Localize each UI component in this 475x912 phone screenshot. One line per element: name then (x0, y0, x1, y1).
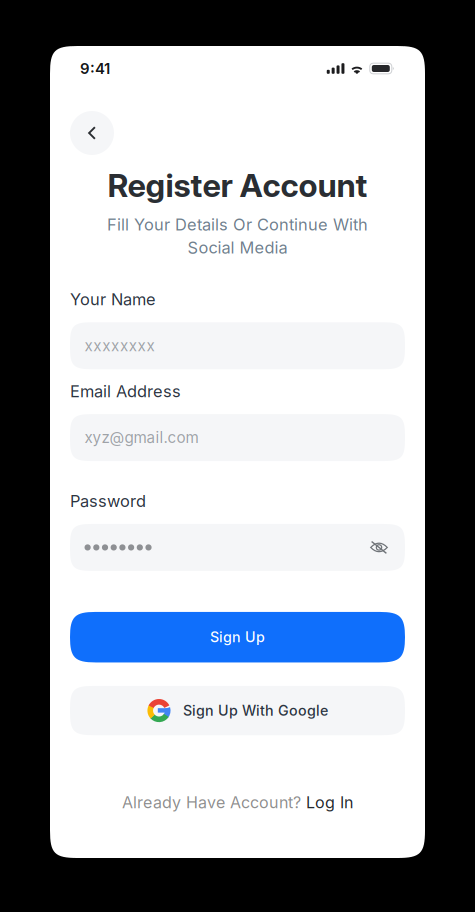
staticText: Sign Up With Google (183, 702, 328, 719)
button[interactable]: Back (70, 111, 114, 155)
staticText: Already Have Account? (122, 793, 301, 812)
staticText: Social Media (187, 238, 287, 257)
button[interactable]: Sign Up With Google (70, 686, 405, 735)
button[interactable]: Log In (306, 793, 353, 812)
button[interactable]: Show password (370, 541, 388, 554)
staticText: 9:41 (80, 59, 110, 78)
staticText: Sign Up (210, 629, 265, 646)
button[interactable]: Sign Up (70, 612, 405, 662)
staticText: xxxxxxxx (84, 337, 154, 355)
staticText: Log In (306, 793, 353, 812)
staticText: xyz@gmail.com (84, 428, 198, 447)
staticText: Register Account (107, 166, 367, 205)
staticText: Email Address (70, 381, 181, 401)
staticText: Your Name (70, 289, 156, 309)
staticText: Fill Your Details Or Continue With (107, 215, 368, 234)
staticText: Password (70, 491, 146, 511)
